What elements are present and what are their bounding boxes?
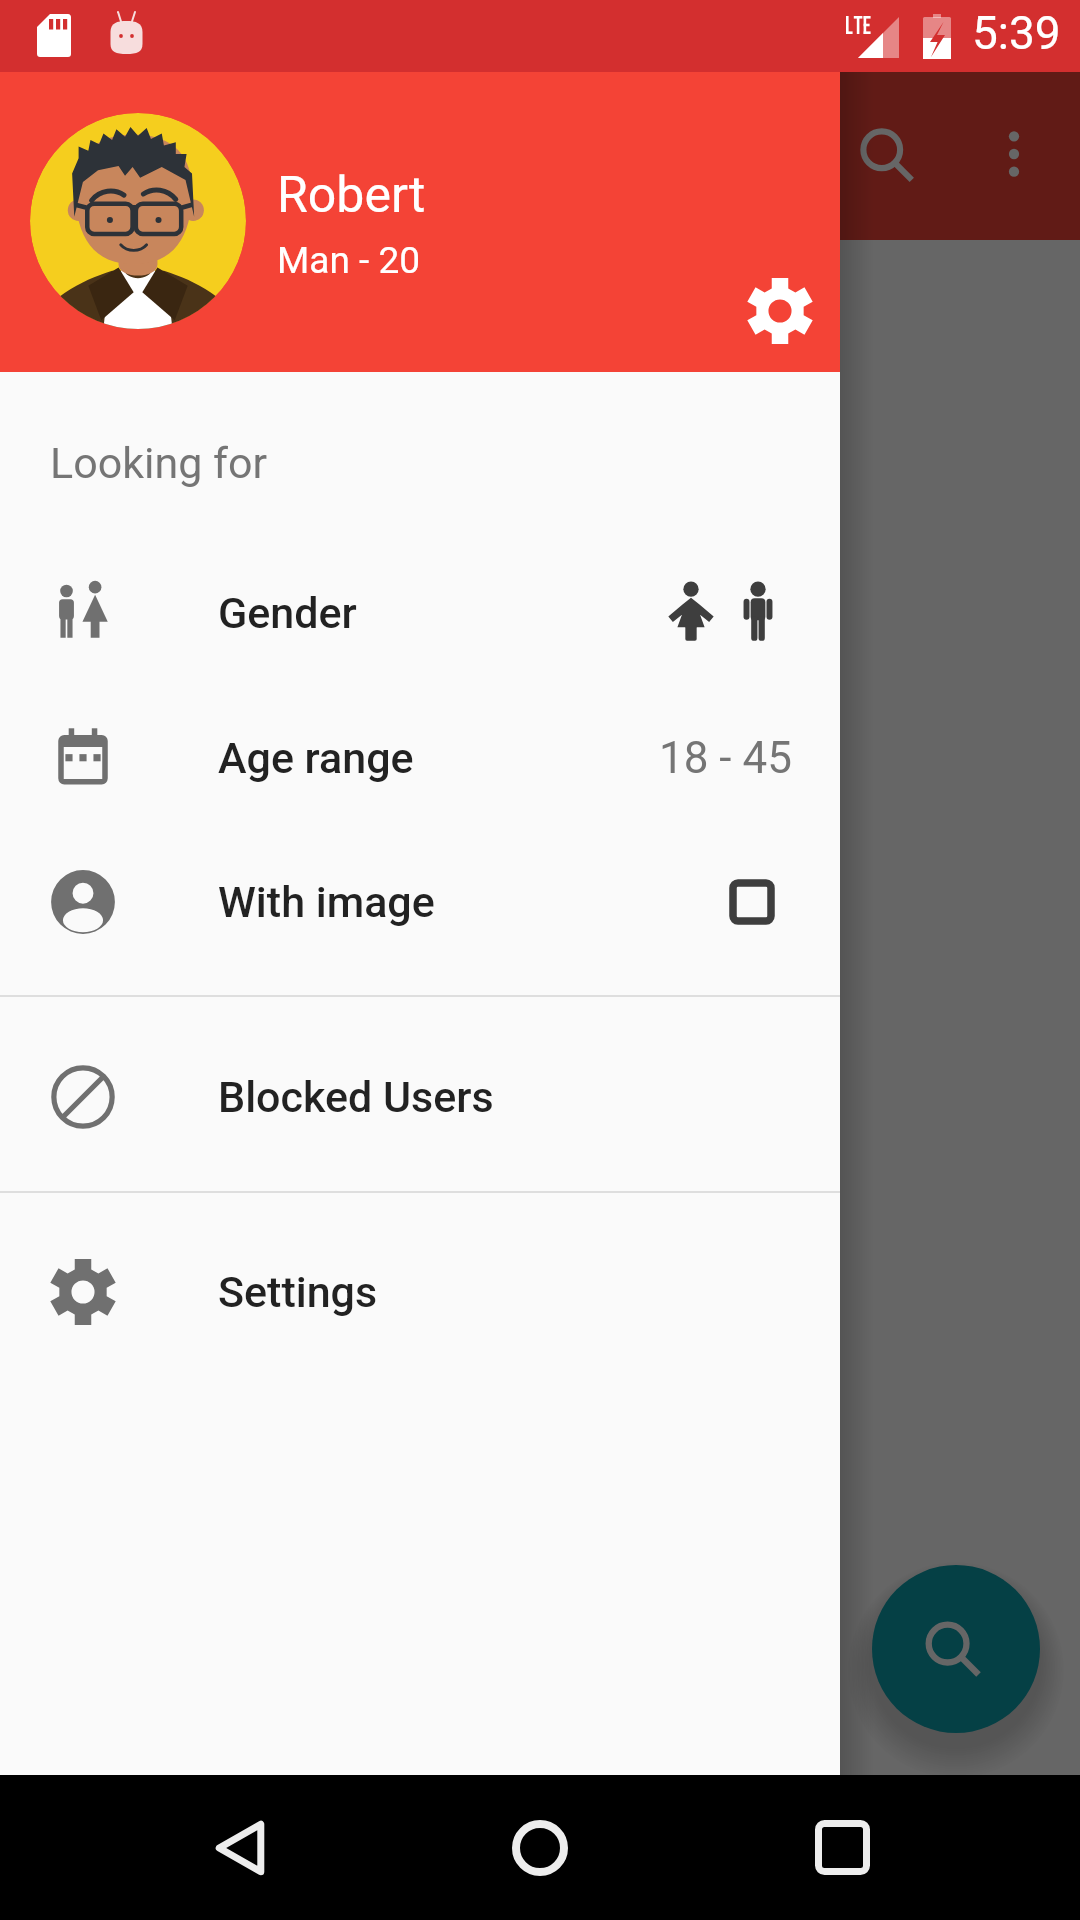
staticText: Blocked Users bbox=[218, 1072, 494, 1122]
button[interactable]: Search bbox=[872, 1565, 1040, 1733]
button[interactable]: Age range bbox=[0, 685, 840, 830]
button[interactable]: Home bbox=[480, 1788, 600, 1908]
button[interactable]: Settings bbox=[0, 1219, 840, 1364]
button[interactable]: Recents bbox=[780, 1788, 900, 1908]
staticText: Looking for bbox=[50, 438, 268, 488]
staticText: Age range bbox=[218, 733, 414, 783]
staticText: Robert bbox=[277, 166, 426, 225]
staticText: Man - 20 bbox=[277, 239, 421, 282]
button[interactable]: Search bbox=[827, 95, 947, 215]
staticText: 18 - 45 bbox=[659, 732, 792, 784]
button[interactable]: Back bbox=[183, 1788, 303, 1908]
staticText: 5:39 bbox=[972, 6, 1061, 60]
button[interactable]: With image bbox=[0, 829, 840, 974]
staticText: Settings bbox=[218, 1267, 378, 1317]
staticText: With image bbox=[218, 877, 435, 927]
button[interactable]: Profile settings bbox=[720, 251, 840, 371]
button[interactable]: More options bbox=[954, 94, 1074, 214]
button[interactable]: Gender bbox=[0, 540, 840, 685]
button[interactable]: With image checkbox bbox=[729, 879, 775, 925]
button[interactable]: Robert bbox=[0, 72, 840, 372]
button[interactable]: Blocked Users bbox=[0, 1024, 840, 1169]
staticText: Gender bbox=[218, 588, 357, 638]
